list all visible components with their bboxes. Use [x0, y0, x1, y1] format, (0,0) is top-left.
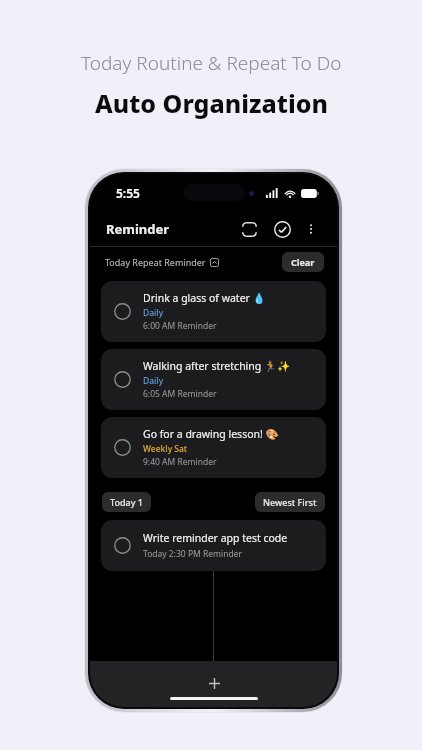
staticText: Weekly Sat [143, 443, 188, 455]
staticText: Walking after stretching 🏃✨ [143, 359, 291, 373]
staticText: Today Repeat Reminder [105, 256, 206, 268]
staticText: Write reminder app test code [143, 531, 288, 545]
button[interactable]: Complete Go for a drawing lesson! 🎨 [101, 417, 326, 478]
button[interactable]: Completed [269, 216, 295, 242]
staticText: 6:05 AM Reminder [143, 388, 217, 400]
staticText: Reminder [106, 220, 170, 238]
button[interactable]: More options [299, 217, 323, 241]
staticText: 9:40 AM Reminder [143, 456, 217, 468]
staticText: Daily [143, 307, 164, 319]
staticText: Newest First [263, 496, 317, 508]
staticText: Today 1 [110, 496, 143, 508]
button[interactable]: Complete Write reminder app test code [101, 520, 326, 571]
button[interactable]: Clear [282, 252, 324, 272]
staticText: Clear [291, 256, 315, 268]
button[interactable]: Complete Go for a drawing lesson! 🎨 [113, 438, 132, 457]
button[interactable]: Complete Write reminder app test code [113, 536, 132, 555]
staticText: Drink a glass of water 💧 [143, 291, 266, 305]
button[interactable]: Complete Drink a glass of water 💧 [113, 302, 132, 321]
staticText: Daily [143, 375, 164, 387]
staticText: Auto Organization [95, 86, 328, 120]
button[interactable]: Today Repeat Reminder [105, 256, 219, 268]
button[interactable]: Newest First [255, 492, 325, 512]
staticText: Today 2:30 PM Reminder [143, 548, 242, 560]
button[interactable]: Complete Walking after stretching 🏃✨ [101, 349, 326, 410]
button[interactable]: Complete Walking after stretching 🏃✨ [113, 370, 132, 389]
staticText: 6:00 AM Reminder [143, 320, 217, 332]
staticText: Go for a drawing lesson! 🎨 [143, 427, 279, 441]
staticText: 5:55 [116, 185, 140, 201]
button[interactable]: Today 1 [102, 492, 151, 512]
button[interactable]: Complete Drink a glass of water 💧 [101, 281, 326, 342]
button[interactable]: Add reminder [201, 670, 227, 696]
button[interactable]: Focus mode [236, 216, 262, 242]
staticText: Today Routine & Repeat To Do [81, 50, 342, 76]
